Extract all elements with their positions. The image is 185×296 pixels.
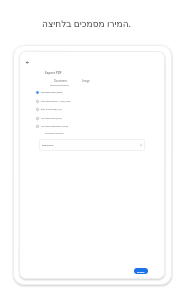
button[interactable]: Back [24, 59, 31, 66]
staticText: Microsoft Word (.docx) [41, 91, 63, 94]
button[interactable]: Demo.docx [39, 139, 145, 151]
staticText: Microsoft PowerPoint (.pptx) [41, 125, 69, 128]
button[interactable]: Microsoft Word (.docx) [19, 88, 165, 96]
staticText: Microsoft Word 97 - 2003 (.doc) [41, 100, 71, 103]
staticText: Export [137, 270, 145, 273]
staticText: Demo.docx [42, 144, 54, 147]
staticText: המירו מסמכים בלחיצה. [0, 17, 179, 29]
button[interactable]: Document [54, 79, 67, 83]
button[interactable]: Microsoft Word 97 - 2003 (.doc) [19, 97, 165, 105]
staticText: Rich Text Format (.rtf) [41, 108, 62, 111]
button[interactable]: Export [134, 268, 148, 274]
button[interactable]: Microsoft PowerPoint (.pptx) [19, 122, 165, 130]
button[interactable]: Microsoft Excel (.xlsx) [19, 114, 165, 122]
button[interactable]: Rich Text Format (.rtf) [19, 105, 165, 113]
staticText: Microsoft Excel (.xlsx) [41, 117, 62, 120]
staticText: Document selected [45, 132, 64, 135]
button[interactable]: Image [82, 79, 90, 83]
staticText: Export PDF [45, 71, 62, 75]
